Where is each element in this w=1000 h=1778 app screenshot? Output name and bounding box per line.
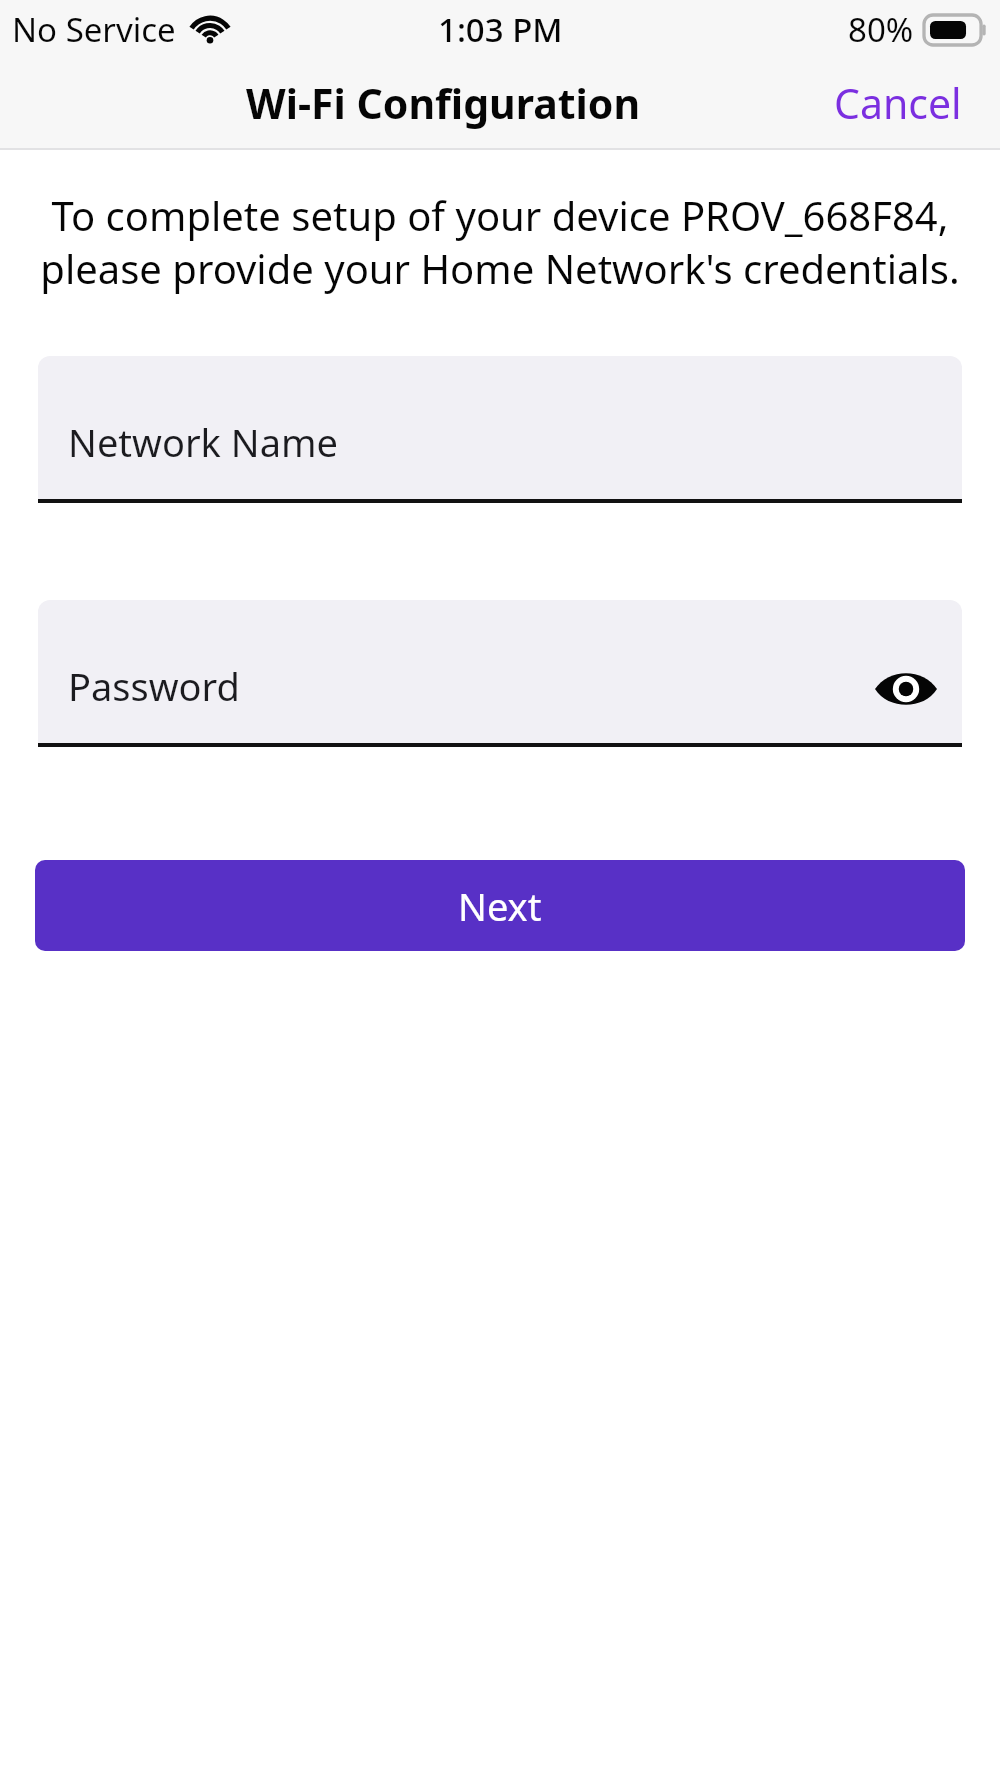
staticText: To complete setup of your device PROV_66… bbox=[30, 188, 970, 295]
staticText: Network Name bbox=[68, 416, 338, 468]
staticText: 80% bbox=[848, 7, 914, 52]
staticText: Next bbox=[458, 880, 542, 932]
button[interactable]: Cancel bbox=[796, 61, 1000, 145]
button[interactable]: Network Name bbox=[38, 356, 962, 503]
button[interactable]: Show password bbox=[860, 643, 952, 735]
button[interactable]: Password bbox=[38, 600, 962, 747]
staticText: Cancel bbox=[834, 75, 962, 131]
staticText: 1:03 PM bbox=[438, 7, 563, 52]
staticText: Wi-Fi Configuration bbox=[246, 75, 641, 131]
button[interactable]: Next bbox=[35, 860, 965, 951]
staticText: Password bbox=[68, 660, 240, 712]
staticText: No Service bbox=[12, 7, 176, 52]
